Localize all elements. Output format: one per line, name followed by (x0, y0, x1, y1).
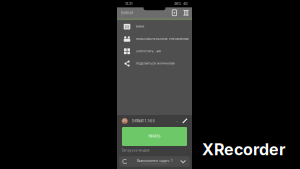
button[interactable]: Сервер (172, 9, 177, 16)
staticText: НАЧАТЬ (148, 135, 160, 138)
staticText: Загрузка модов (121, 148, 149, 152)
button[interactable]: НАЧАТЬ (122, 127, 187, 146)
button[interactable]: ВИКИ (117, 20, 192, 33)
staticText: Default 1.16.5 (131, 119, 154, 123)
staticText: ПОДЕЛИТЬСЯ ЖУРНАЛОМ (136, 62, 174, 65)
staticText: Выполняется задач: 1 (137, 159, 172, 163)
button[interactable]: ПОЛЬЗОВАТЕЛЬСКОЕ УПРАВЛЕНИЕ (117, 33, 192, 45)
button[interactable]: Выполняется задач: 1 (119, 156, 190, 167)
button[interactable]: Default 1.16.5 (117, 115, 192, 127)
staticText: ВИКИ (136, 25, 144, 28)
staticText: ВИКИ (121, 10, 133, 15)
staticText: XRecorder (202, 140, 286, 159)
staticText: ЗАПУСТИТЬ .JAR (136, 50, 161, 53)
button[interactable]: ЗАПУСТИТЬ .JAR (117, 45, 192, 57)
staticText: ··· (175, 119, 178, 123)
button[interactable]: Меню (177, 10, 192, 15)
staticText: ПОЛЬЗОВАТЕЛЬСКОЕ УПРАВЛЕНИЕ (136, 37, 189, 40)
staticText: 36% 4G (174, 2, 188, 6)
staticText: 13:31 (125, 2, 132, 6)
button[interactable]: ПОДЕЛИТЬСЯ ЖУРНАЛОМ (117, 57, 192, 70)
